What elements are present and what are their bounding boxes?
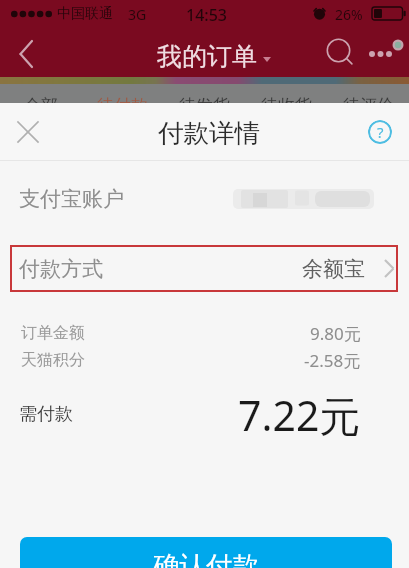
staticText: -2.58元 — [304, 349, 361, 371]
staticText: 付款方式 — [19, 256, 103, 282]
button[interactable]: 待收货 — [245, 84, 327, 103]
staticText: 支付宝账户 — [19, 186, 124, 212]
staticText: 3G — [128, 5, 147, 24]
staticText: 14:53 — [186, 4, 227, 26]
staticText: 26% — [335, 5, 363, 24]
staticText: 付款详情 — [158, 117, 260, 149]
staticText: 全部 — [24, 95, 58, 114]
button[interactable]: 待发货 — [163, 84, 245, 103]
button[interactable]: 帮助 — [363, 115, 397, 149]
button[interactable]: 付款方式 — [10, 245, 398, 292]
staticText: 7.22元 — [238, 387, 361, 441]
staticText: 待评价 — [343, 95, 394, 114]
button[interactable]: 确认付款 — [20, 537, 392, 568]
button[interactable]: 更多 — [368, 40, 408, 68]
button[interactable]: 返回 — [5, 34, 45, 74]
staticText: 待收货 — [261, 95, 312, 114]
button[interactable]: 支付宝账户 — [19, 161, 374, 237]
staticText: 需付款 — [19, 403, 73, 426]
staticText: 中国联通 — [57, 5, 113, 23]
staticText: 待发货 — [179, 95, 230, 114]
staticText: 确认付款 — [153, 549, 259, 568]
staticText: 9.80元 — [310, 322, 361, 344]
button[interactable]: 待评价 — [327, 84, 409, 103]
staticText: 订单金额 — [21, 323, 85, 343]
staticText: 天猫积分 — [21, 350, 85, 370]
staticText: 待付款 — [97, 95, 148, 114]
button[interactable]: 搜索 — [321, 33, 361, 73]
button[interactable]: 关闭 — [4, 108, 52, 156]
staticText: 我的订单 — [157, 41, 257, 72]
staticText: ? — [377, 122, 384, 142]
staticText: 余额宝 — [302, 256, 365, 282]
button[interactable]: 全部 — [0, 84, 81, 103]
button[interactable]: 待付款 — [81, 84, 163, 103]
